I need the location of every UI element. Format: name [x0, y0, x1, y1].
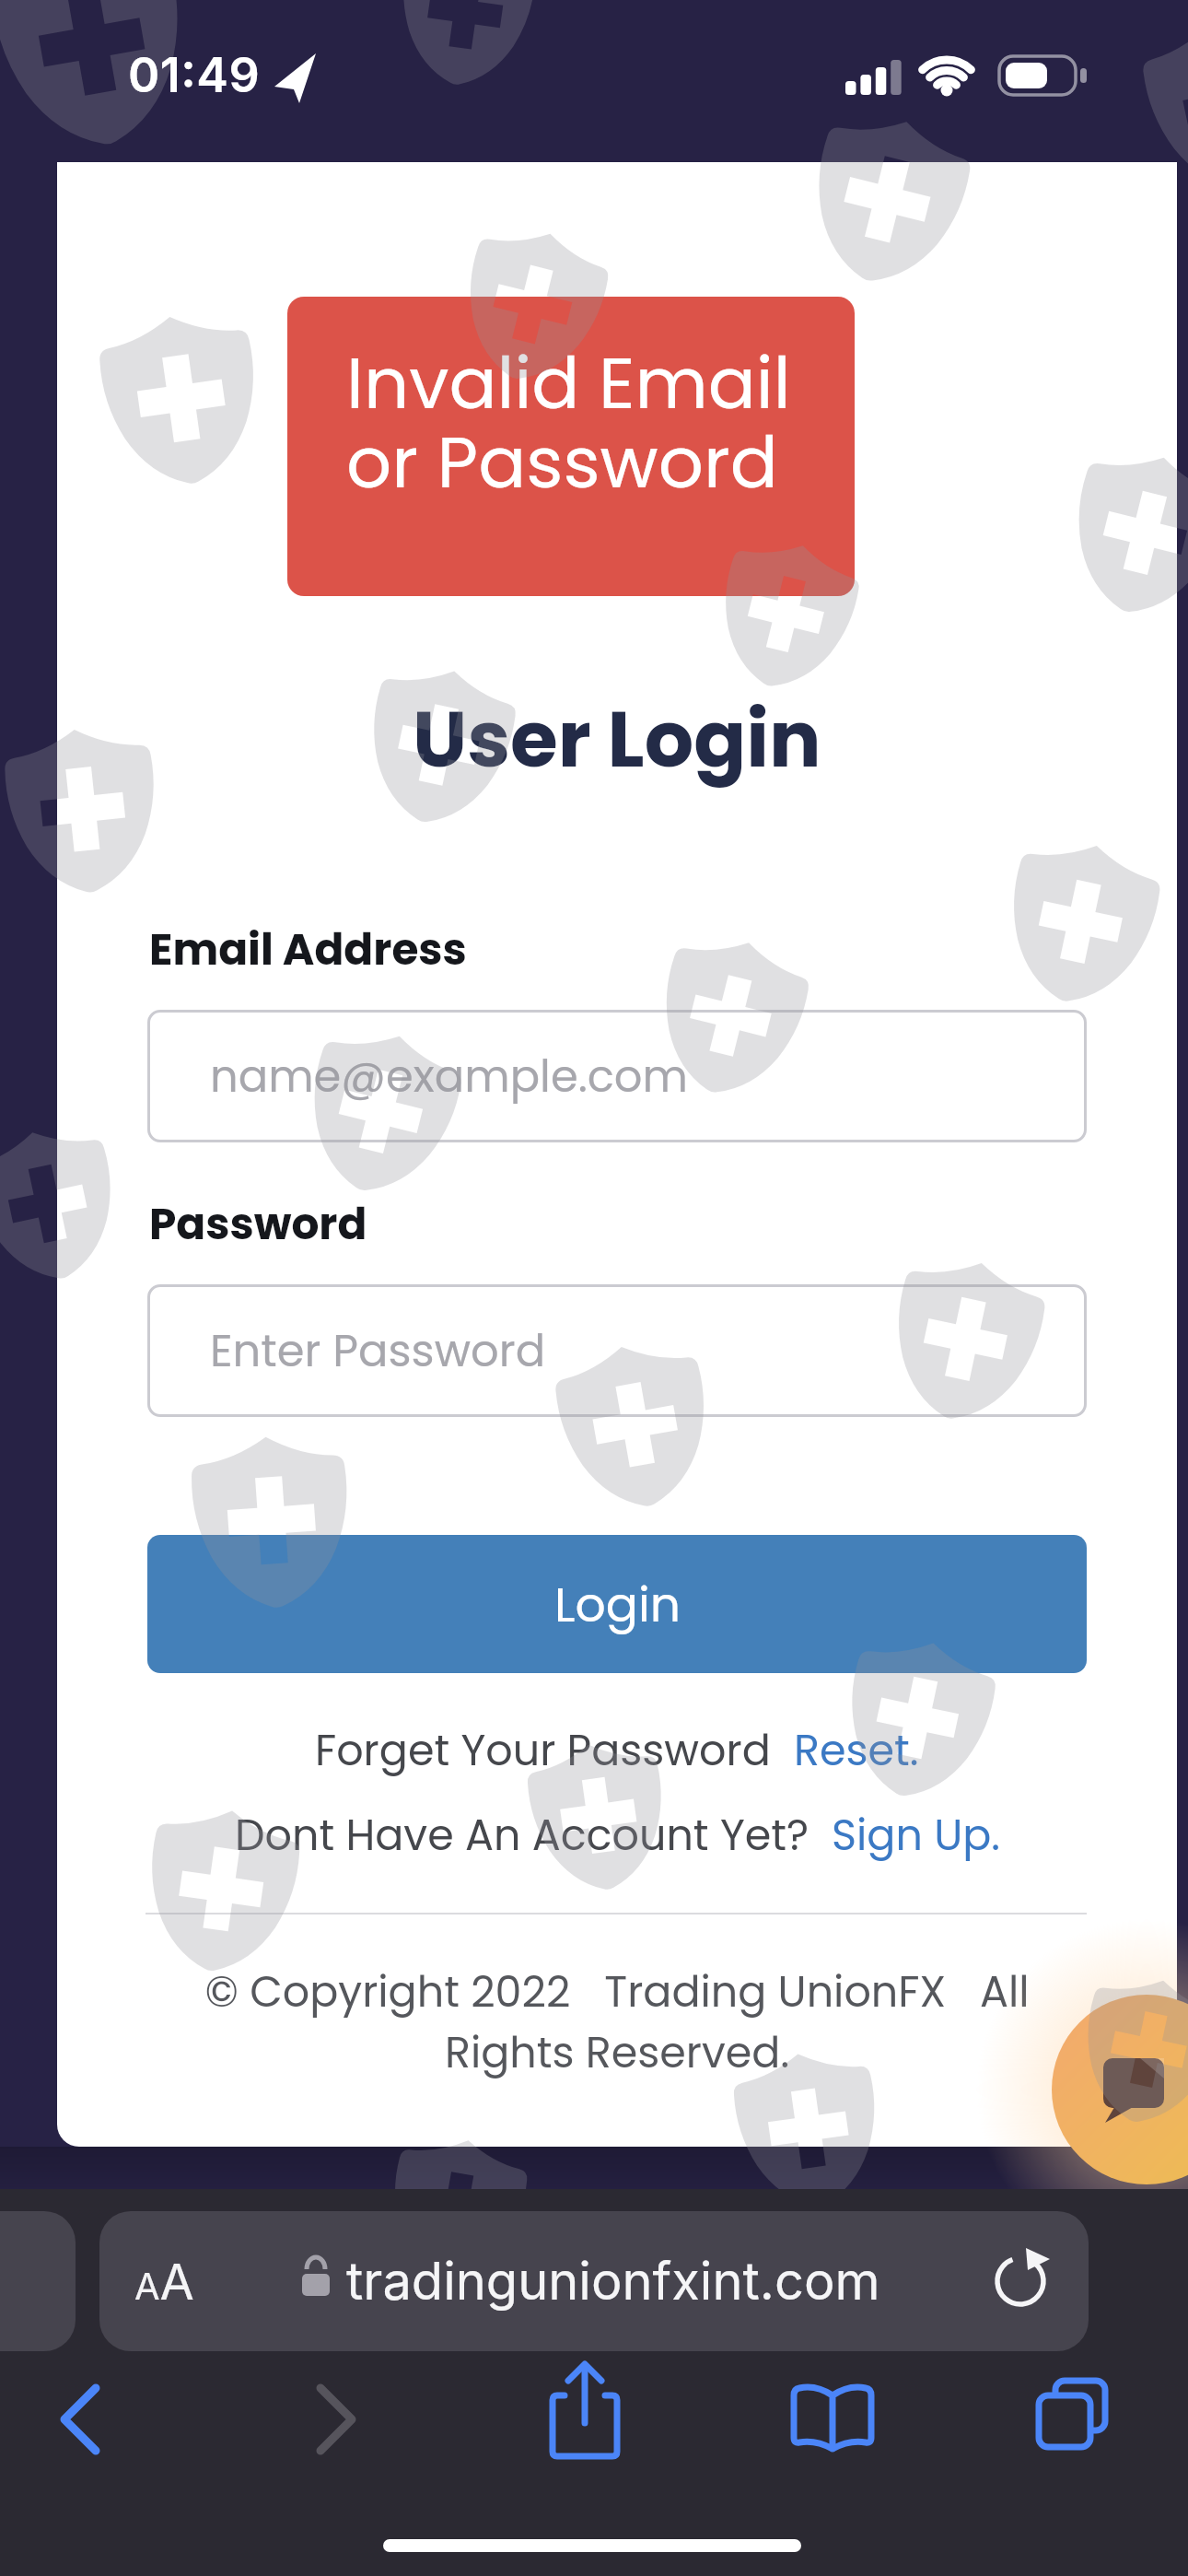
button[interactable]: Reset.: [794, 1721, 919, 1780]
staticText: 01:49: [128, 46, 261, 104]
staticText: Login: [554, 1571, 681, 1638]
button[interactable]: [783, 2377, 884, 2460]
button[interactable]: name@example.com: [147, 1010, 1087, 1142]
button[interactable]: Login: [147, 1535, 1087, 1673]
staticText: Password: [149, 1194, 367, 1255]
staticText: AA: [134, 2252, 194, 2312]
staticText: Forget Your Password: [315, 1721, 794, 1780]
button[interactable]: [295, 2377, 387, 2469]
staticText: Dont Have An Account Yet?: [235, 1806, 832, 1865]
staticText: © Copyright 2022 Trading UnionFX All Rig…: [204, 1962, 1030, 2082]
staticText: Email Address: [149, 919, 467, 980]
button[interactable]: [1027, 2372, 1119, 2460]
button[interactable]: [1056, 1998, 1188, 2181]
staticText: User Login: [413, 685, 821, 794]
staticText: Enter Password: [210, 1320, 546, 1382]
staticText: tradingunionfxint.com: [346, 2250, 880, 2313]
button[interactable]: Sign Up.: [832, 1806, 1000, 1865]
staticText: Invalid Email or Password: [346, 334, 791, 512]
button[interactable]: [539, 2359, 631, 2460]
staticText: name@example.com: [210, 1046, 689, 1107]
button[interactable]: Enter Password: [147, 1284, 1087, 1417]
button[interactable]: [46, 2377, 138, 2469]
button[interactable]: AA: [99, 2211, 1089, 2351]
